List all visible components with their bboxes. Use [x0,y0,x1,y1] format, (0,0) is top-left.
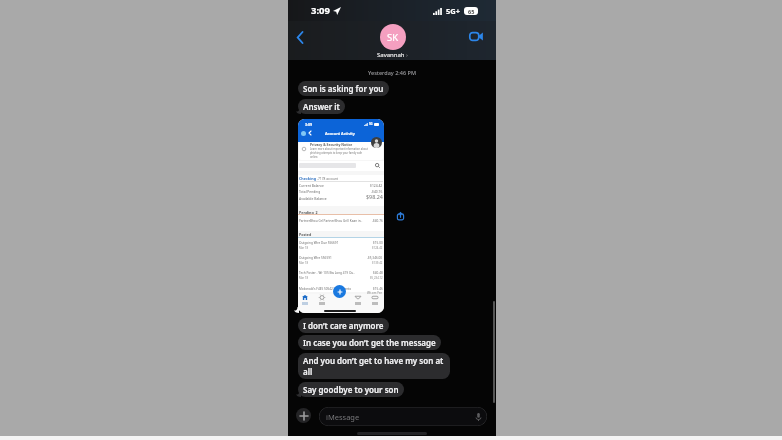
button[interactable]: SK [377,24,408,59]
button[interactable]: Answer it [298,99,345,114]
staticText: Pending 2 [299,210,318,215]
staticText: Outgoing Wire 556591 [299,256,332,260]
button[interactable]: Say goodbye to your son [298,382,404,397]
staticText: 5G [369,122,373,126]
staticText: In case you don’t get the message [303,337,436,348]
staticText: Mcdonald's F4E5 50542 Sacramento [299,287,352,291]
staticText: 3:09 [305,122,313,127]
button[interactable]: Photo attachment [298,119,384,313]
staticText: $124.42 [370,183,383,187]
button[interactable]: FaceTime video call [467,29,485,43]
staticText: Account Activity [325,131,355,136]
staticText: Mar 18 [299,276,309,280]
button[interactable]: iMessage [319,407,487,426]
staticText: 5G+ [446,6,461,16]
staticText: Savannah [377,51,405,59]
staticText: $124.42 [372,246,383,250]
staticText: $98.24 [366,193,383,200]
staticText: Tech Poster - Wr 105 Bw Long 419 Ou.. [299,271,355,275]
staticText: Mar 18 [299,261,309,265]
staticText: I don’t care anymore [303,320,384,331]
staticText: Learn more about important information a… [310,147,368,159]
button[interactable]: Home [302,295,308,305]
staticText: iMessage [326,412,360,422]
button[interactable]: Deposit [355,295,361,305]
button[interactable]: And you don’t get to have my son at all [298,353,450,379]
staticText: -$40.76 [372,219,383,223]
staticText: › [406,51,408,59]
staticText: Son is asking for you [303,83,384,94]
staticText: Checking [299,176,316,181]
staticText: Total Pending [299,189,321,193]
button[interactable]: Save image [396,211,404,221]
button[interactable]: Profile [371,137,382,148]
button[interactable]: Back [292,29,308,45]
button[interactable]: Transfer [319,295,325,305]
staticText: 3:09 [311,4,330,17]
button[interactable]: I don’t care anymore [298,318,389,333]
button[interactable]: Add [333,285,346,298]
staticText: Posted [299,232,312,237]
staticText: Yesterday 2:46 PM [288,69,496,76]
button[interactable]: Cards [372,295,378,305]
staticText: And you don’t get to have my son at all [303,355,445,377]
staticText: Answer it [303,101,340,112]
staticText: PartnerBhou Grl PartnerBhou Grill Kaan i… [299,219,363,223]
button[interactable]: Add attachment [296,408,311,423]
staticText: 65 [468,8,475,15]
staticText: -$5,346.00 [367,256,383,260]
staticText: Current Balance [299,183,324,187]
staticText: Say goodbye to your son [303,384,399,395]
button[interactable]: In case you don’t get the message [298,335,441,350]
staticText: $40.48 [373,271,383,275]
staticText: $5,234.12 [370,276,383,280]
staticText: $15.46 [373,287,383,291]
staticText: Wit.pm Pen [367,291,383,295]
button[interactable]: Son is asking for you [298,81,389,96]
staticText: SK [387,31,399,44]
staticText: $15.00 [373,241,383,245]
staticText: Privacy & Security Notice [310,142,353,147]
staticText: -$40.76 [371,189,383,193]
staticText: Available Balance [299,196,327,201]
staticText: $139.42 [372,261,383,265]
staticText: -7178 account [317,177,339,181]
staticText: Mar 18 [299,246,309,250]
staticText: Outgoing Wire Due 556691 [299,241,339,245]
